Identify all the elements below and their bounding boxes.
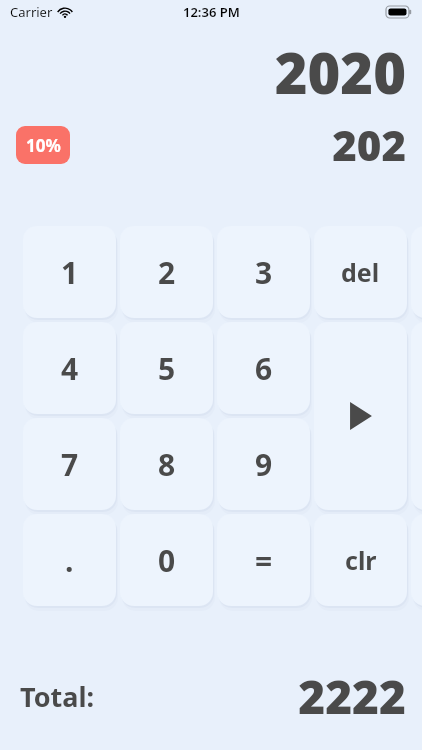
staticText: =: [255, 540, 273, 581]
staticText: 0: [158, 540, 176, 581]
button[interactable]: 9: [217, 418, 310, 510]
button[interactable]: 8: [120, 418, 213, 510]
staticText: 12:36 PM: [183, 3, 240, 21]
button[interactable]: 7: [23, 418, 116, 510]
button[interactable]: 10%: [16, 126, 70, 164]
staticText: clr: [345, 543, 377, 577]
staticText: del: [341, 255, 380, 289]
staticText: 202: [332, 116, 406, 173]
button[interactable]: =: [217, 514, 310, 606]
button[interactable]: Enter: [314, 322, 407, 510]
button[interactable]: 5: [120, 322, 213, 414]
staticText: 7: [61, 444, 79, 485]
staticText: 2: [158, 252, 176, 293]
staticText: 10%: [26, 134, 61, 157]
button[interactable]: 2: [120, 226, 213, 318]
staticText: 3: [255, 252, 273, 293]
staticText: 1: [61, 252, 79, 293]
staticText: 6: [255, 348, 273, 389]
button[interactable]: del: [314, 226, 407, 318]
staticText: 5: [158, 348, 176, 389]
button[interactable]: 0: [120, 514, 213, 606]
staticText: 8: [158, 444, 176, 485]
button[interactable]: .: [23, 514, 116, 606]
button[interactable]: 1: [23, 226, 116, 318]
button[interactable]: 3: [217, 226, 310, 318]
staticText: Carrier: [10, 3, 53, 21]
staticText: Total:: [20, 678, 95, 715]
staticText: 9: [255, 444, 273, 485]
button[interactable]: 6: [217, 322, 310, 414]
staticText: 2222: [298, 665, 406, 728]
staticText: 4: [61, 348, 79, 389]
staticText: 2020: [274, 34, 406, 110]
button[interactable]: clr: [314, 514, 407, 606]
button[interactable]: 4: [23, 322, 116, 414]
staticText: .: [65, 540, 74, 581]
